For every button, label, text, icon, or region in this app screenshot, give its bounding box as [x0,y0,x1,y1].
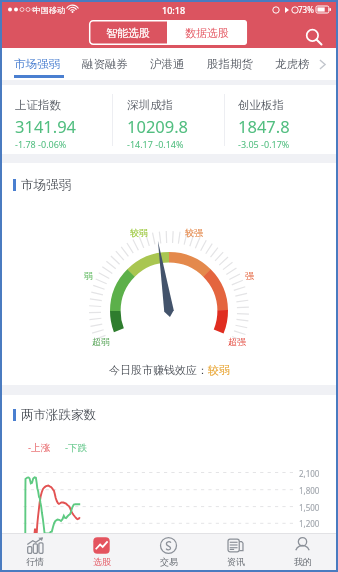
button[interactable]: 沪港通 [150,48,185,80]
staticText: -下跌 [65,441,88,454]
staticText: 1,800 [299,485,320,496]
button[interactable]: 行情 [2,534,68,570]
staticText: 超强 [228,336,246,347]
button[interactable]: 我的 [269,534,336,570]
staticText: 上证指数 [15,98,61,112]
staticText: 股指期货 [207,57,253,71]
staticText: -14.17 -0.14% [127,138,184,150]
staticText: 我的 [294,556,312,567]
staticText: 10:18 [162,4,186,16]
staticText: 龙虎榜 [275,57,310,71]
staticText: 两市涨跌家数 [21,407,96,423]
staticText: 数据选股 [185,26,229,40]
staticText: 73% [298,4,314,15]
staticText: 2,100 [299,468,320,479]
button[interactable]: 市场强弱 [14,48,60,80]
staticText: 资讯 [227,556,245,567]
staticText: 行情 [26,556,44,567]
button[interactable]: 交易 [135,534,202,570]
staticText: 较弱 [208,363,230,377]
staticText: 3141.94 [15,115,77,137]
staticText: 交易 [160,556,178,567]
button[interactable]: 深圳成指 [114,85,225,154]
staticText: 融资融券 [82,57,128,71]
staticText: 超弱 [92,336,110,347]
button[interactable]: 创业板指 [225,85,336,154]
button[interactable]: Search [297,20,323,46]
button[interactable]: 数据选股 [167,20,247,45]
staticText: 较强 [185,227,203,238]
button[interactable]: 股指期货 [207,48,253,80]
staticText: 选股 [93,556,111,567]
button[interactable]: 智能选股 [89,20,167,45]
staticText: 弱 [84,270,93,281]
button[interactable]: 龙虎榜 [275,48,310,80]
button[interactable]: 上证指数 [2,85,114,154]
staticText: 1847.8 [238,115,290,137]
staticText: 创业板指 [238,98,284,112]
button[interactable]: 融资融券 [82,48,128,80]
staticText: 市场强弱 [21,177,71,193]
staticText: 强 [245,270,254,281]
staticText: -上涨 [28,441,51,454]
staticText: 较弱 [130,227,148,238]
staticText: 1,200 [299,518,320,529]
staticText: 深圳成指 [127,98,173,112]
staticText: 市场强弱 [14,57,60,71]
staticText: 10209.8 [127,115,189,137]
staticText: 1,500 [299,502,320,513]
button[interactable]: More tabs [312,48,332,80]
button[interactable]: 选股 [68,534,135,570]
staticText: 今日股市赚钱效应： [109,363,208,377]
staticText: -3.05 -0.17% [238,138,290,150]
button[interactable]: 资讯 [202,534,269,570]
staticText: 沪港通 [150,57,185,71]
staticText: -1.78 -0.06% [15,138,67,150]
staticText: 智能选股 [106,26,150,40]
staticText: 中国移动 [33,5,65,15]
